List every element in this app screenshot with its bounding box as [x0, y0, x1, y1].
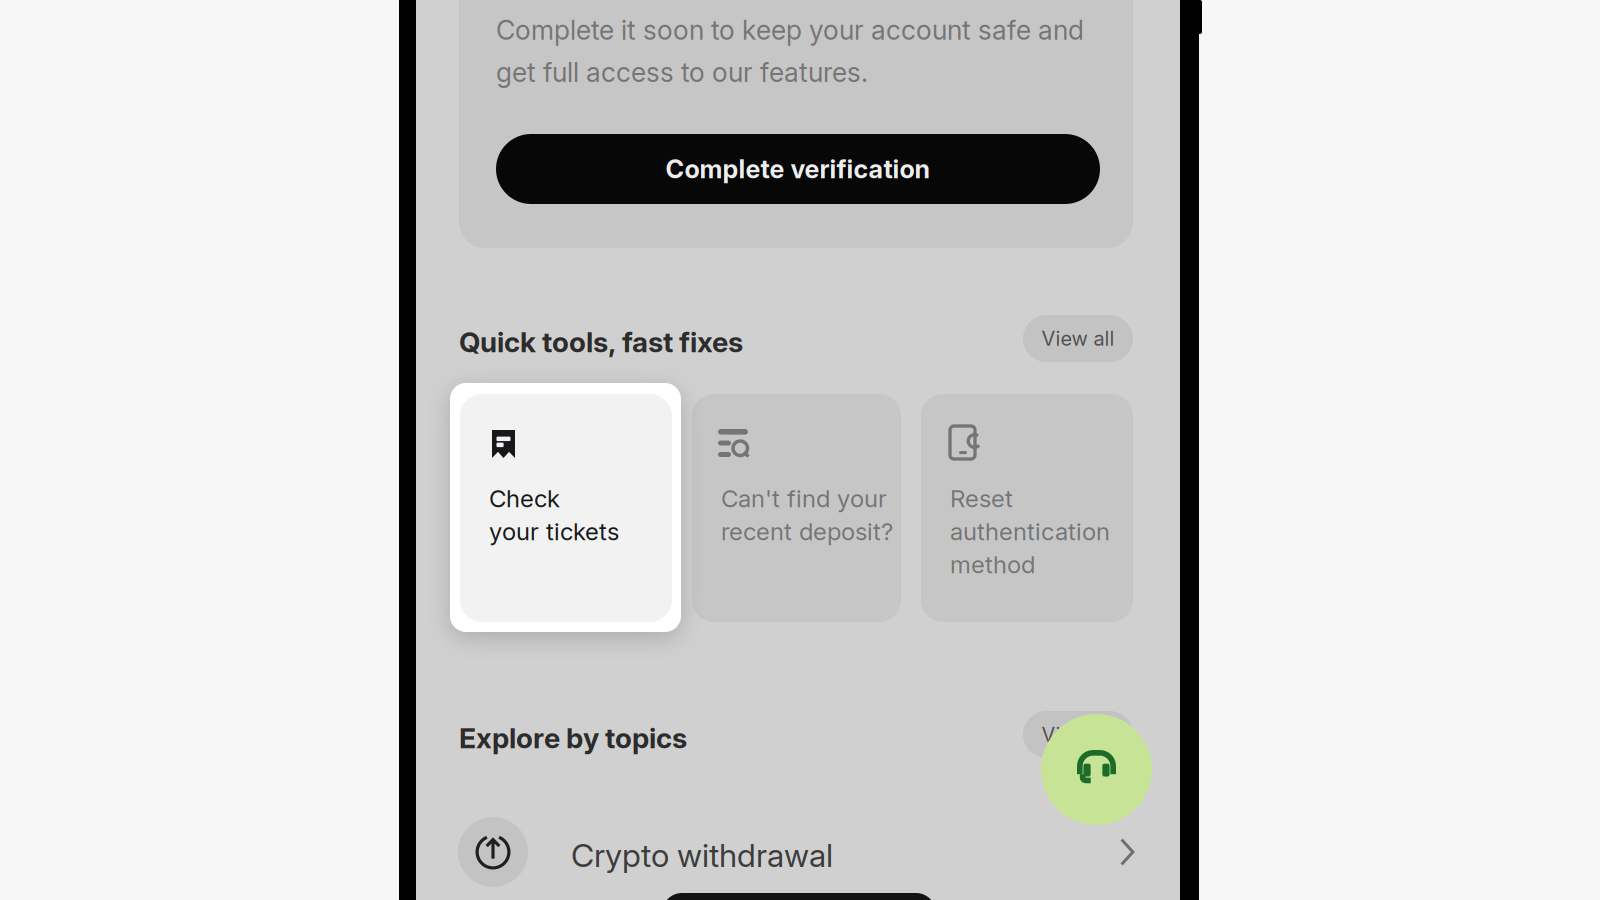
staticText: Crypto withdrawal: [571, 836, 833, 875]
staticText: Complete verification: [665, 154, 930, 184]
button[interactable]: Complete verification: [496, 134, 1100, 204]
staticText: Check: [489, 484, 560, 513]
button[interactable]: Reset: [921, 394, 1133, 622]
staticText: Can't find your: [721, 484, 887, 513]
staticText: authentication: [950, 517, 1110, 546]
button[interactable]: View all: [1023, 711, 1133, 758]
button[interactable]: Contact support: [1041, 714, 1152, 825]
staticText: Complete it soon to keep your account sa…: [496, 14, 1084, 46]
staticText: get full access to our features.: [496, 56, 868, 89]
staticText: method: [950, 550, 1035, 579]
staticText: recent deposit?: [721, 517, 893, 546]
button[interactable]: Crypto withdrawal: [458, 817, 1148, 887]
staticText: Reset: [950, 484, 1013, 513]
button[interactable]: Check: [460, 394, 672, 622]
staticText: Quick tools, fast fixes: [459, 325, 743, 359]
staticText: View all: [1041, 722, 1114, 747]
staticText: Explore by topics: [459, 721, 687, 755]
button[interactable]: View all: [1023, 315, 1133, 362]
staticText: View all: [1041, 326, 1114, 351]
button[interactable]: Can't find your: [692, 394, 901, 622]
staticText: your tickets: [489, 517, 619, 546]
